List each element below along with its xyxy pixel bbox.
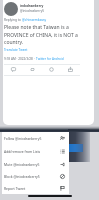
- staticText: @chinaembassy: [22, 18, 47, 22]
- staticText: Follow @inixdraeberry5: [4, 136, 42, 141]
- staticText: Mute @inixdraeberry5: [4, 162, 40, 167]
- staticText: Twitter for Android: [36, 57, 64, 61]
- button[interactable]: Report Tweet: [2, 182, 69, 194]
- button[interactable]: Like: [42, 64, 61, 75]
- staticText: Translate Tweet: [4, 48, 28, 52]
- button[interactable]: Block @inixdraeberry5: [2, 170, 69, 182]
- staticText: Report Tweet: [4, 186, 26, 191]
- button[interactable]: Follow @inixdraeberry5: [2, 132, 69, 145]
- staticText: Please note that Taiwan is a PROVINCE of…: [4, 24, 80, 45]
- button[interactable]: Translate Tweet: [4, 48, 28, 52]
- button[interactable]: Reply: [4, 64, 23, 75]
- button[interactable]: Mute @inixdraeberry5: [2, 158, 69, 170]
- staticText: Block @inixdraeberry5: [4, 174, 40, 179]
- button[interactable]: Share: [61, 64, 80, 75]
- staticText: @inixdraeberry5: [20, 9, 45, 13]
- staticText: Add/remove from Lists: [4, 149, 41, 154]
- staticText: 9:18 AM · 2022/3/28 ·: [4, 57, 36, 61]
- staticText: indxdrawberry: [20, 4, 44, 8]
- button[interactable]: Add/remove from Lists: [2, 145, 69, 158]
- staticText: Replying to: [4, 18, 22, 22]
- button[interactable]: Retweet: [23, 64, 42, 75]
